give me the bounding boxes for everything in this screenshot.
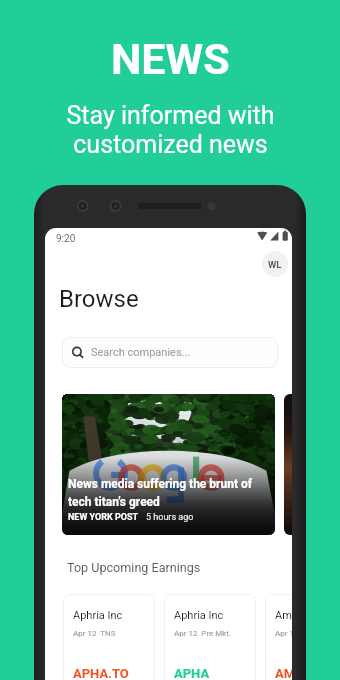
- staticText: Aphria Inc: [73, 609, 123, 622]
- staticText: Apr 13 TNS: [275, 629, 292, 638]
- staticText: APHA: [174, 666, 210, 680]
- staticText: Aphria Inc: [174, 609, 224, 622]
- staticText: APHA.TO: [73, 666, 129, 680]
- staticText: Amd Inc: [275, 609, 292, 622]
- staticText: Stay informed with customized news: [66, 101, 275, 159]
- staticText: Browse: [59, 285, 139, 313]
- button[interactable]: Amd Inc: [265, 594, 292, 680]
- button[interactable]: Aphria Inc: [164, 594, 256, 680]
- staticText: WL: [268, 259, 282, 270]
- staticText: NEW YORK POST: [68, 512, 139, 523]
- staticText: Apr 12 Pre Mkt.: [174, 629, 232, 638]
- button[interactable]: News media suffering the brunt of tech t…: [62, 394, 275, 535]
- staticText: 5 hours ago: [146, 512, 194, 523]
- staticText: Search companies...: [91, 346, 191, 359]
- staticText: News media suffering the brunt of tech t…: [68, 477, 253, 509]
- button[interactable]: Search companies...: [62, 337, 278, 368]
- staticText: NEWS: [111, 34, 230, 84]
- staticText: 9:20: [56, 233, 76, 245]
- button[interactable]: Account: [262, 251, 288, 277]
- staticText: Apr 12 TNS: [73, 629, 116, 638]
- staticText: AMD: [275, 666, 292, 680]
- button[interactable]: Aphria Inc: [63, 594, 155, 680]
- staticText: Top Upcoming Earnings: [67, 560, 201, 575]
